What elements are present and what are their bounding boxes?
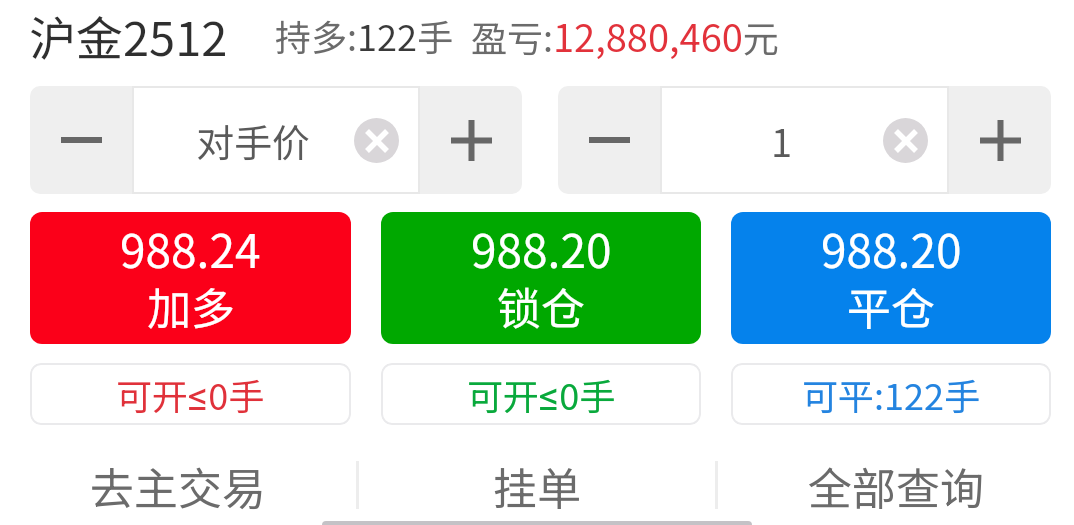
button[interactable]: Decrease	[558, 86, 660, 194]
staticText: 沪金2512	[29, 1, 228, 69]
staticText: 盈亏:12,880,460元	[471, 8, 779, 63]
button[interactable]: 对手价	[132, 86, 420, 194]
button[interactable]: 988.20	[381, 212, 701, 344]
button[interactable]: Clear	[883, 118, 928, 163]
staticText: 988.24	[120, 215, 261, 282]
button[interactable]: Clear	[354, 118, 399, 163]
button[interactable]: 988.24	[30, 212, 351, 344]
staticText: 可开≤0手	[467, 368, 616, 420]
staticText: 锁仓	[497, 274, 585, 338]
staticText: 对手价	[196, 113, 311, 168]
staticText: 挂单	[493, 454, 581, 516]
staticText: 平仓	[847, 274, 935, 338]
staticText: 988.20	[821, 215, 962, 282]
button[interactable]: Decrease	[30, 86, 132, 194]
button[interactable]: 988.20	[731, 212, 1051, 344]
staticText: 可开≤0手	[116, 368, 265, 420]
button[interactable]: 挂单	[359, 454, 715, 516]
button[interactable]: 可开≤0手	[381, 363, 701, 425]
staticText: 持多:122手	[275, 9, 453, 61]
staticText: 1	[771, 113, 793, 168]
button[interactable]: 可开≤0手	[30, 363, 351, 425]
button[interactable]: 可平:122手	[731, 363, 1051, 425]
button[interactable]: Increase	[420, 86, 522, 194]
button[interactable]: 全部查询	[718, 454, 1074, 516]
button[interactable]: 去主交易	[0, 454, 356, 516]
staticText: 加多	[147, 274, 235, 338]
staticText: 去主交易	[90, 454, 266, 516]
staticText: 可平:122手	[802, 368, 980, 420]
button[interactable]: Increase	[949, 86, 1051, 194]
button[interactable]: 1	[660, 86, 949, 194]
staticText: 全部查询	[808, 454, 984, 516]
staticText: 988.20	[471, 215, 612, 282]
